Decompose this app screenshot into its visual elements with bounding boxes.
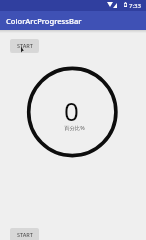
staticText: 百分比% xyxy=(64,124,85,131)
staticText: 0 xyxy=(64,93,79,128)
other: Wi-Fi xyxy=(107,2,113,7)
button[interactable]: START xyxy=(10,39,39,52)
other: Mobile signal xyxy=(113,3,117,8)
other: Battery xyxy=(124,2,127,7)
staticText: START xyxy=(17,42,33,49)
staticText: START xyxy=(17,231,33,238)
staticText: ColorArcProgressBar xyxy=(6,16,82,26)
staticText: 7:33 xyxy=(129,2,141,10)
button[interactable]: START xyxy=(10,228,39,240)
